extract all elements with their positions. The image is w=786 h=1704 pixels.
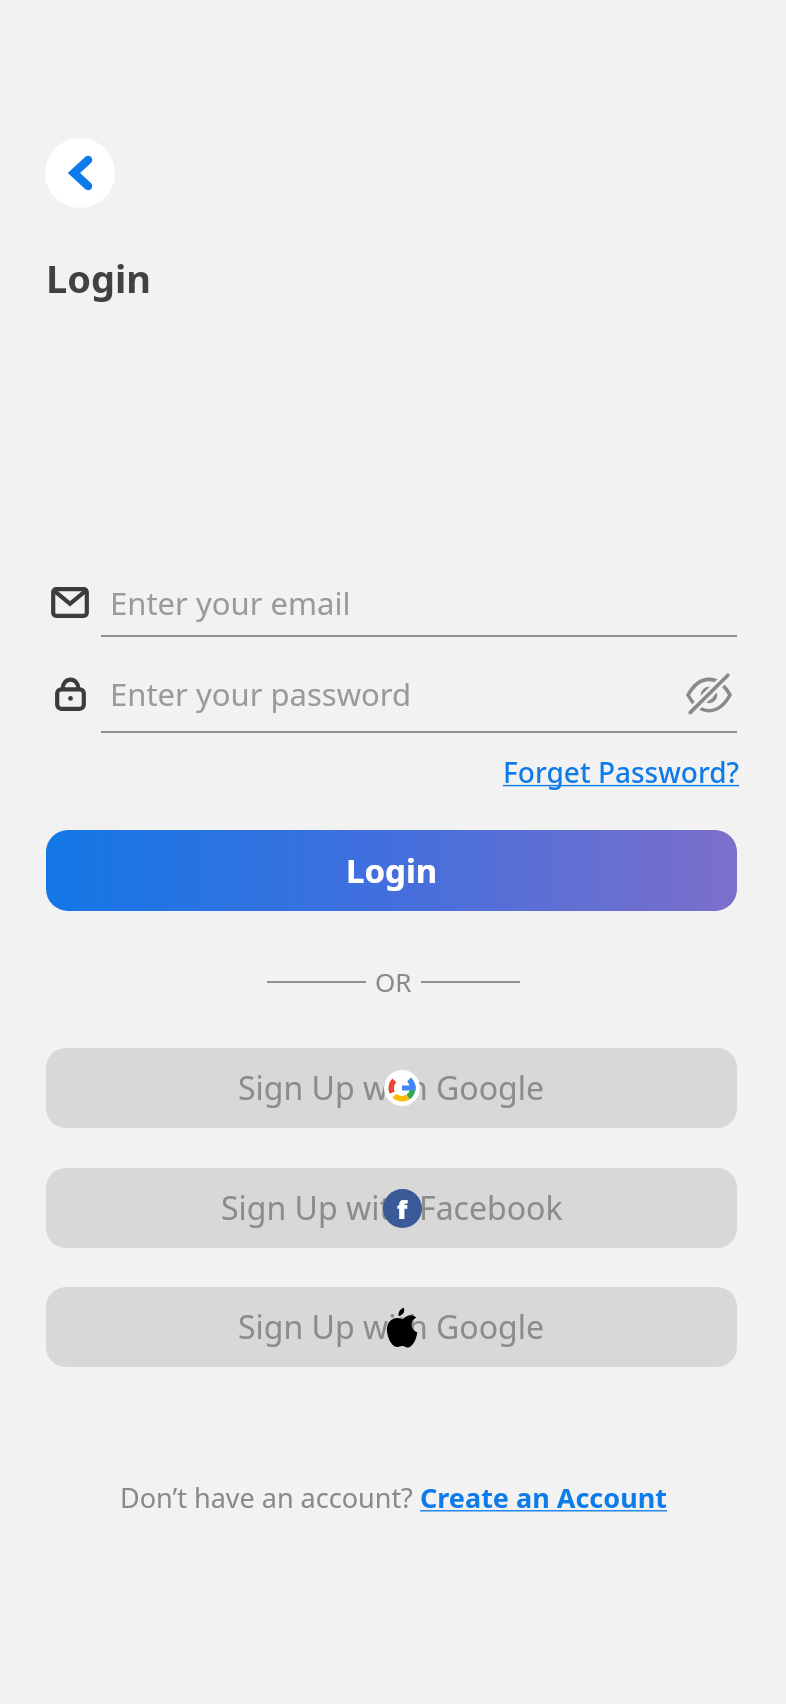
staticText: Sign Up with Facebook [221,1186,563,1230]
button[interactable]: Show password [678,664,740,726]
button[interactable]: Sign Up with Google [46,1287,737,1367]
staticText: Enter your email [110,582,351,624]
staticText: f [397,1192,408,1226]
staticText: Sign Up with Google [238,1066,545,1110]
button[interactable]: Sign Up with Facebook [46,1168,737,1248]
staticText: OR [375,964,412,999]
staticText: Sign Up with Google [238,1305,545,1349]
staticText: Don’t have an account? [120,1479,420,1516]
button[interactable]: Forget Password? [503,748,740,796]
button[interactable]: Create an Account [420,1479,667,1516]
staticText: Forget Password? [503,753,740,791]
staticText: Enter your password [110,673,412,715]
button[interactable]: Login [46,830,737,911]
staticText: Login [346,848,438,893]
staticText: Login [46,252,152,304]
button[interactable]: Sign Up with Google [46,1048,737,1128]
button[interactable]: Back [45,138,115,208]
